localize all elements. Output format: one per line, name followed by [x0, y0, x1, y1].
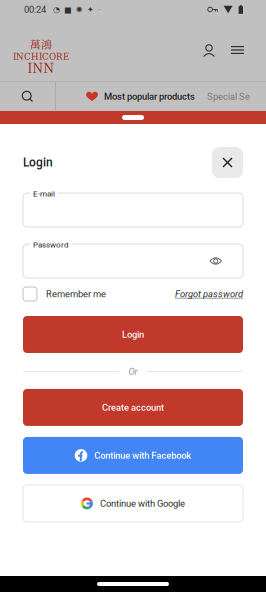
staticText: Special Se — [207, 91, 250, 102]
button[interactable]: Account — [203, 43, 215, 56]
button[interactable]: Remember me — [23, 287, 106, 301]
button[interactable]: Special Se — [207, 82, 250, 111]
staticText: Login — [122, 329, 144, 340]
button[interactable]: Most popular products — [86, 82, 195, 111]
staticText: Continue with Facebook — [94, 450, 191, 461]
button[interactable]: Create account — [23, 389, 243, 426]
staticText: ◔ — [53, 5, 60, 14]
button[interactable]: Close — [212, 147, 243, 178]
button[interactable]: Forgot password — [175, 288, 243, 299]
button[interactable]: Menu — [231, 46, 244, 54]
staticText: Forgot password — [175, 288, 243, 299]
staticText: INCHICORE — [13, 52, 69, 62]
staticText: Create account — [102, 402, 164, 413]
staticText: Login — [23, 155, 53, 170]
button[interactable]: Continue with Facebook — [23, 437, 243, 474]
staticText: Or — [128, 366, 137, 377]
staticText: ✦ — [87, 5, 94, 14]
staticText: 萬鴻 — [30, 36, 52, 52]
button[interactable]: Continue with Google — [23, 485, 243, 522]
staticText: INN — [27, 62, 54, 76]
staticText: E-mail — [33, 189, 55, 198]
button[interactable]: Search — [0, 82, 55, 111]
staticText: Continue with Google — [100, 498, 185, 509]
staticText: 00:24 — [24, 4, 46, 15]
staticText: · — [98, 5, 100, 14]
staticText: Remember me — [46, 288, 106, 299]
staticText: ✺ — [76, 5, 83, 14]
staticText: Password — [33, 240, 69, 249]
staticText: ◼ — [64, 4, 72, 15]
staticText: Most popular products — [104, 91, 195, 102]
button[interactable]: Login — [23, 316, 243, 353]
